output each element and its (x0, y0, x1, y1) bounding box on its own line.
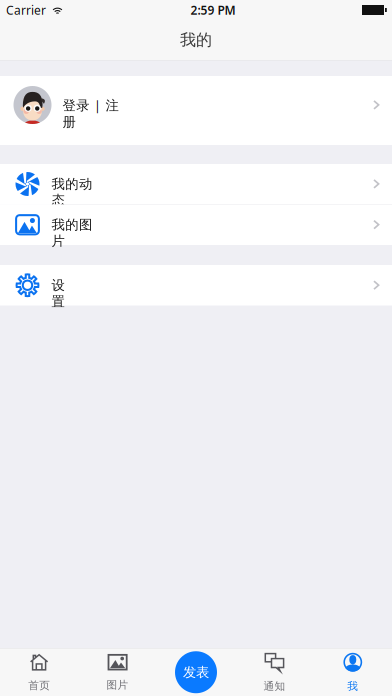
staticText: 我的图片 (51, 217, 106, 233)
button[interactable]: 设置 (0, 265, 392, 305)
staticText: 2:59 PM (190, 2, 235, 18)
staticText: 我 (347, 680, 358, 693)
staticText: 发表 (183, 664, 209, 680)
button[interactable]: 我的图片 (0, 204, 392, 245)
staticText: 设置 (51, 277, 78, 293)
staticText: 登录 | 注册 (62, 96, 132, 114)
staticText: Carrier (6, 2, 46, 18)
staticText: 首页 (28, 679, 50, 692)
staticText: 通知 (263, 680, 285, 693)
button[interactable]: 发表 (157, 648, 235, 696)
staticText: 图片 (107, 678, 129, 691)
staticText: 我的动态 (51, 176, 106, 192)
button[interactable]: 图片 (78, 648, 157, 696)
staticText: 我的 (180, 30, 212, 50)
button[interactable]: 我的动态 (0, 164, 392, 204)
button[interactable]: 我 (314, 648, 392, 696)
button[interactable]: 首页 (0, 648, 78, 696)
button[interactable]: 通知 (235, 648, 314, 696)
button[interactable]: 登录 | 注册 (0, 76, 392, 145)
